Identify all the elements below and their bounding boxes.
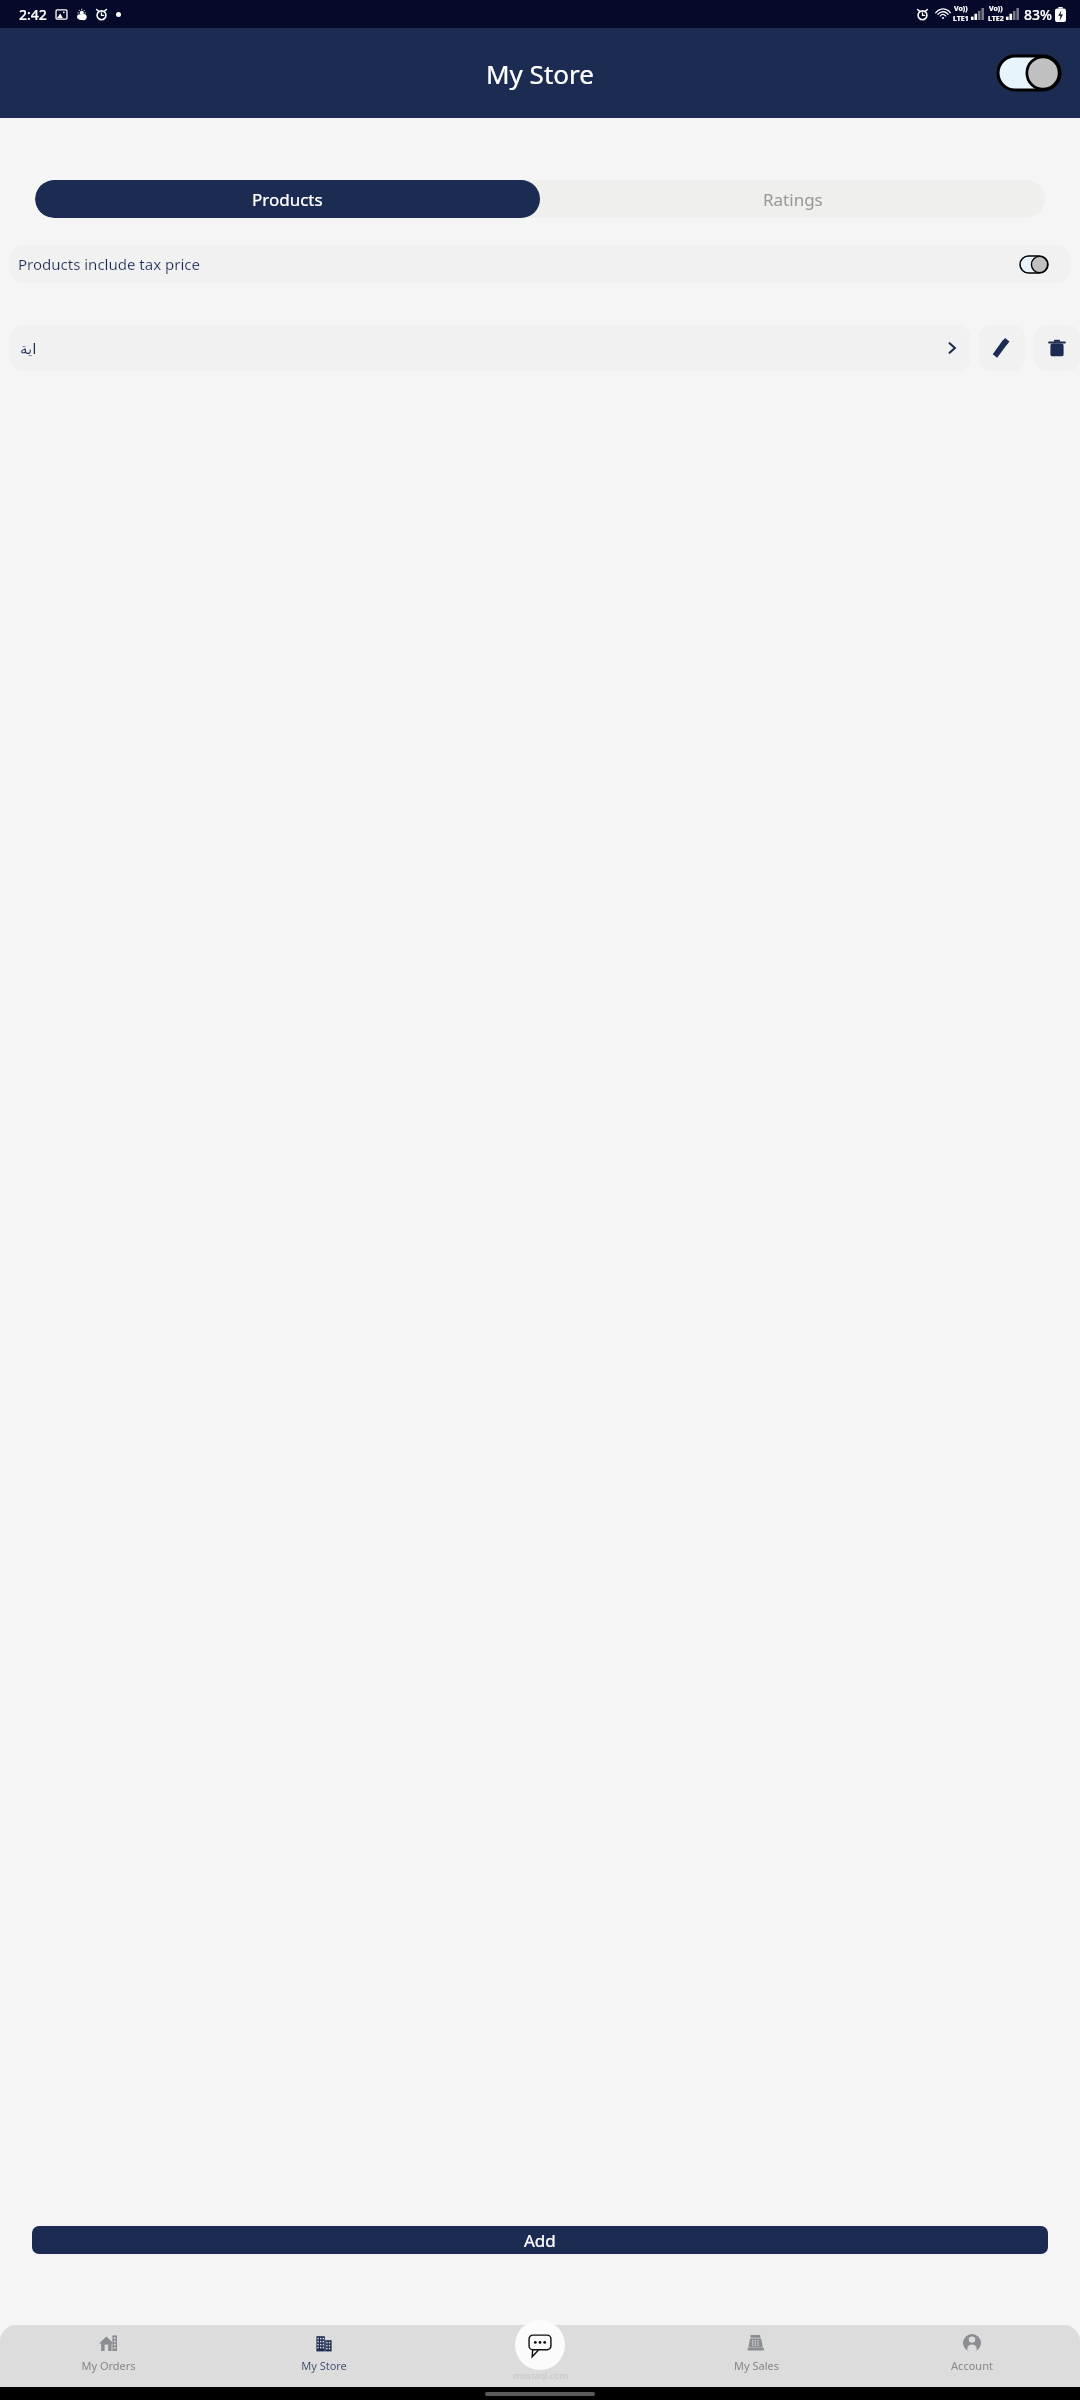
button[interactable]: My Sales	[648, 2333, 864, 2387]
staticText: Vo))	[954, 4, 968, 14]
staticText: Products include tax price	[18, 254, 200, 274]
button[interactable]: My Orders	[0, 2333, 216, 2387]
staticText: Account	[951, 2358, 993, 2373]
button[interactable]: Ratings	[540, 180, 1045, 218]
staticText: My Sales	[734, 2358, 779, 2373]
button[interactable]: Add	[32, 2226, 1048, 2254]
staticText: 2:42	[19, 5, 47, 24]
button[interactable]: My Store	[216, 2333, 432, 2387]
staticText: Vo))	[989, 4, 1003, 14]
button[interactable]: Delete	[1034, 325, 1080, 371]
staticText: Products	[252, 188, 323, 211]
button[interactable]: اية	[10, 325, 970, 371]
staticText: Add	[524, 2229, 556, 2252]
staticText: LTE1	[953, 14, 969, 24]
staticText: Ratings	[763, 188, 823, 211]
staticText: 83%	[1024, 5, 1052, 24]
staticText: My Store	[301, 2358, 347, 2373]
button[interactable]: Account	[864, 2333, 1080, 2387]
button[interactable]: Products include tax price	[10, 245, 1070, 283]
staticText: My Store	[486, 56, 594, 91]
button[interactable]: Chat	[515, 2320, 565, 2370]
staticText: My Orders	[81, 2358, 136, 2373]
button[interactable]: Edit	[979, 325, 1025, 371]
button[interactable]: Store open toggle	[998, 56, 1060, 90]
staticText: mostaql.com	[513, 2369, 568, 2381]
button[interactable]: Products	[35, 180, 540, 218]
staticText: اية	[20, 340, 37, 357]
staticText: LTE2	[988, 14, 1004, 24]
